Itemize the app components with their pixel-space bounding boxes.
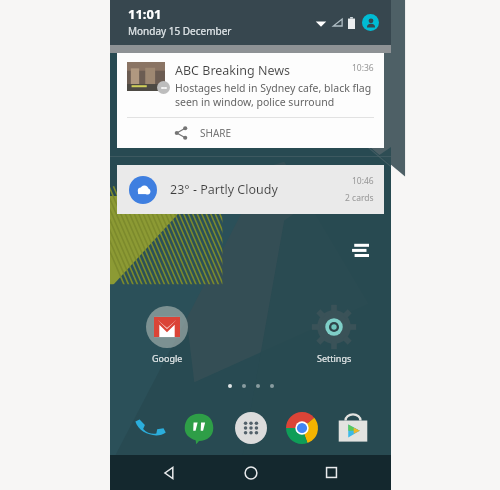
staticText: Google <box>152 352 183 364</box>
button[interactable]: Recents <box>311 455 351 490</box>
staticText: 23° - Partly Cloudy <box>170 181 345 198</box>
staticText: SHARE <box>200 126 232 140</box>
staticText: Settings <box>317 352 352 364</box>
button[interactable]: Google <box>132 306 202 364</box>
button[interactable]: Back <box>150 455 190 490</box>
button[interactable]: Settings <box>299 306 369 364</box>
staticText: Hostages held in Sydney cafe, black flag <box>175 81 372 95</box>
button[interactable]: User profile <box>362 14 379 31</box>
staticText: 10:46 <box>352 175 374 187</box>
button[interactable]: 23° - Partly Cloudy <box>117 165 384 214</box>
staticText: 10:36 <box>352 62 374 74</box>
button[interactable]: Notifications <box>347 238 373 264</box>
staticText: 2 cards <box>345 192 374 204</box>
button[interactable]: ABC Breaking News <box>117 53 384 148</box>
button[interactable]: Phone <box>126 406 170 450</box>
staticText: ABC Breaking News <box>175 62 352 79</box>
button[interactable]: Play Store <box>331 406 375 450</box>
button[interactable]: Chrome <box>280 406 324 450</box>
button[interactable]: SHARE <box>117 118 384 148</box>
button[interactable]: Home <box>231 455 271 490</box>
staticText: 11:01 <box>128 5 162 23</box>
staticText: seen in window, police surround building <box>175 95 374 109</box>
button[interactable]: Hangouts <box>177 406 221 450</box>
button[interactable]: All apps <box>229 406 273 450</box>
staticText: Monday 15 December <box>128 24 232 38</box>
